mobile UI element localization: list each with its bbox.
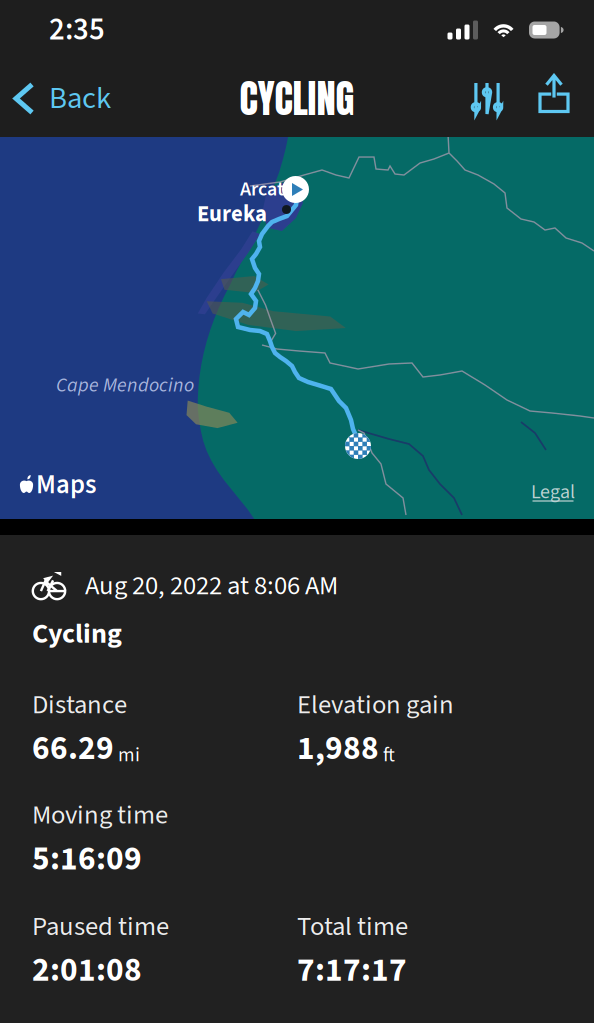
staticText: CYCLING (239, 69, 354, 128)
button[interactable]: Workout settings (454, 60, 520, 137)
staticText: Elevation gain (297, 686, 454, 724)
staticText: Arcata (240, 175, 294, 203)
staticText: Cycling (32, 614, 122, 654)
staticText: ft (383, 741, 395, 769)
staticText: Distance (32, 686, 127, 724)
staticText: mi (118, 741, 140, 769)
staticText: Maps (36, 466, 96, 504)
button[interactable]: Back (0, 60, 125, 137)
staticText: Aug 20, 2022 at 8:06 AM (85, 567, 338, 605)
staticText: 7:17:17 (297, 947, 407, 994)
staticText: 2:35 (49, 8, 105, 52)
staticText: Legal (531, 478, 575, 506)
staticText: Moving time (32, 796, 168, 834)
staticText: Back (49, 77, 111, 120)
staticText: 1,988 (297, 725, 379, 772)
staticText: Paused time (32, 908, 169, 946)
staticText: 5:16:09 (32, 835, 142, 883)
button[interactable]: Share (520, 60, 594, 137)
staticText: 66.29 (32, 725, 114, 772)
staticText: Cape Mendocino (56, 371, 194, 399)
staticText: 2:01:08 (32, 947, 142, 994)
staticText: Eureka (197, 198, 267, 230)
staticText: Total time (297, 908, 408, 946)
